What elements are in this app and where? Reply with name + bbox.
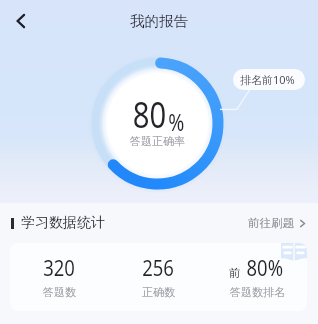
staticText: 排名前10% <box>240 72 295 87</box>
staticText: 256 <box>142 252 175 283</box>
staticText: 答题正确率 <box>130 134 185 148</box>
staticText: 答题数排名 <box>230 285 285 299</box>
button[interactable]: Back <box>6 6 36 36</box>
staticText: 我的报告 <box>130 12 188 30</box>
staticText: 320 <box>43 252 76 283</box>
staticText: 正确数 <box>142 285 175 299</box>
staticText: 80 <box>133 90 166 138</box>
staticText: 80% <box>246 252 283 283</box>
button[interactable]: 前往刷题 <box>248 216 307 230</box>
button[interactable]: 320 <box>10 243 307 311</box>
staticText: % <box>168 106 185 138</box>
staticText: 答题数 <box>43 285 76 299</box>
staticText: 前 <box>229 266 241 280</box>
staticText: 前往刷题 <box>248 216 294 230</box>
button[interactable]: 排名前10% <box>233 69 305 90</box>
staticText: 学习数据统计 <box>21 214 105 232</box>
